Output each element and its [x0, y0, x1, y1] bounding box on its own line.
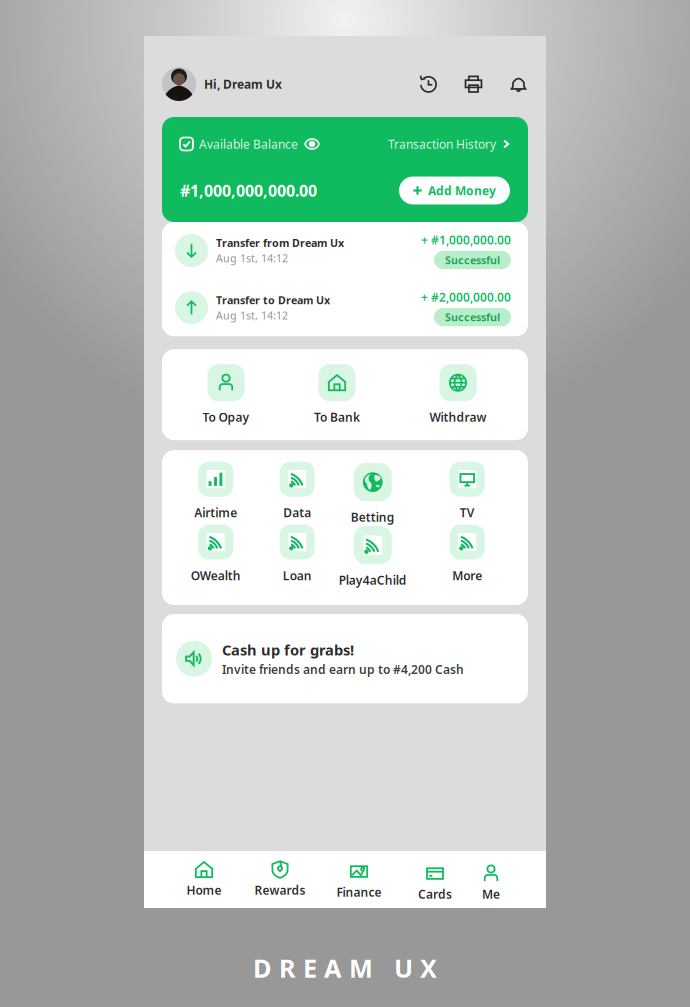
button[interactable]: Airtime: [162, 462, 253, 520]
staticText: Aug 1st, 14:12: [216, 308, 288, 322]
button[interactable]: Cards: [394, 860, 470, 898]
staticText: Transfer from Dream Ux: [216, 236, 344, 250]
staticText: + #1,000,000.00: [421, 232, 511, 248]
staticText: OWealth: [191, 568, 241, 583]
button[interactable]: Play4aChild: [345, 523, 436, 585]
staticText: Withdraw: [429, 409, 486, 425]
staticText: Transaction History: [388, 136, 496, 152]
button[interactable]: To Bank: [284, 364, 406, 425]
staticText: Transfer to Dream Ux: [216, 293, 330, 307]
staticText: More: [452, 568, 482, 583]
staticText: Play4aChild: [339, 572, 407, 588]
button[interactable]: Rewards: [242, 860, 318, 898]
button[interactable]: Add Money: [399, 177, 510, 204]
staticText: Hi, Dream Ux: [204, 76, 282, 92]
staticText: Cards: [418, 886, 452, 902]
button[interactable]: Home: [166, 860, 242, 898]
staticText: To Opay: [202, 409, 249, 425]
button[interactable]: Me: [470, 860, 546, 898]
staticText: Home: [186, 882, 221, 898]
button[interactable]: Transaction History: [388, 136, 510, 152]
staticText: Loan: [283, 568, 312, 583]
button[interactable]: Notifications: [509, 74, 528, 93]
button[interactable]: Statements: [464, 74, 483, 93]
staticText: DREAM UX: [253, 951, 437, 985]
button[interactable]: TV: [436, 462, 528, 520]
staticText: #1,000,000,000.00: [180, 180, 317, 201]
button[interactable]: Cash up for grabs!: [162, 614, 528, 703]
button[interactable]: Withdraw: [406, 364, 528, 425]
staticText: To Bank: [314, 409, 360, 425]
staticText: Me: [482, 886, 500, 902]
staticText: + #2,000,000.00: [421, 289, 511, 305]
button[interactable]: Betting: [345, 460, 436, 522]
staticText: TV: [460, 505, 475, 520]
button[interactable]: Transaction history: [419, 74, 438, 93]
button[interactable]: Finance: [318, 860, 394, 898]
button[interactable]: Loan: [253, 525, 345, 583]
staticText: Available Balance: [199, 136, 298, 152]
button[interactable]: To Opay: [162, 364, 284, 425]
button[interactable]: More: [436, 525, 528, 583]
staticText: Data: [283, 505, 311, 520]
staticText: Successful: [445, 310, 500, 324]
button[interactable]: OWealth: [162, 525, 253, 583]
staticText: Betting: [351, 509, 395, 525]
staticText: Airtime: [194, 505, 237, 520]
staticText: Cash up for grabs!: [222, 640, 354, 659]
button[interactable]: Data: [253, 462, 345, 520]
staticText: Successful: [445, 253, 500, 267]
staticText: Invite friends and earn up to #4,200 Cas…: [222, 661, 464, 677]
staticText: Add Money: [428, 182, 496, 198]
staticText: Rewards: [254, 882, 305, 898]
staticText: Aug 1st, 14:12: [216, 251, 288, 265]
staticText: Finance: [336, 884, 381, 900]
